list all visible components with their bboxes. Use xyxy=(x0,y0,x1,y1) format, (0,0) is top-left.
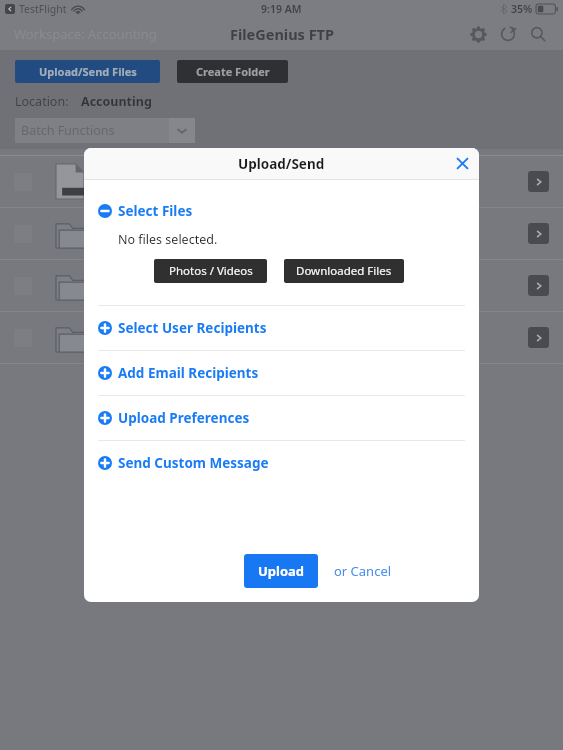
button[interactable]: Open xyxy=(14,312,549,363)
button[interactable]: Open xyxy=(528,275,549,296)
button[interactable]: Select User Recipients xyxy=(98,306,465,350)
staticText: Downloaded Files xyxy=(296,263,392,279)
button[interactable]: Settings xyxy=(463,19,493,49)
staticText: or Cancel xyxy=(334,562,392,580)
button[interactable]: Select Files xyxy=(98,202,465,220)
staticText: Upload/Send Files xyxy=(39,64,137,79)
button[interactable]: or Cancel xyxy=(330,558,396,584)
staticText: Upload/Send xyxy=(238,155,325,173)
button[interactable]: Upload Preferences xyxy=(98,396,465,440)
button[interactable]: Send Custom Message xyxy=(98,441,465,485)
button[interactable]: Open xyxy=(14,156,549,207)
staticText: 9:19 AM xyxy=(261,2,302,16)
staticText: Upload Preferences xyxy=(118,409,250,427)
button[interactable]: Refresh xyxy=(493,19,523,49)
staticText: 35% xyxy=(511,2,533,16)
staticText: Location: xyxy=(15,93,69,110)
staticText: No files selected. xyxy=(118,231,218,248)
staticText: Send Custom Message xyxy=(118,454,269,472)
staticText: TestFlight xyxy=(19,2,67,16)
staticText: Create Folder xyxy=(196,64,270,79)
staticText: Upload xyxy=(258,562,305,580)
button[interactable]: Search xyxy=(523,19,553,49)
staticText: Workspace: Accounting xyxy=(14,25,157,43)
staticText: Select User Recipients xyxy=(118,319,267,337)
button[interactable]: Downloaded Files xyxy=(284,259,404,283)
button[interactable]: Open xyxy=(528,327,549,348)
staticText: FileGenius FTP xyxy=(230,24,334,44)
button[interactable]: Open xyxy=(528,171,549,192)
button[interactable]: Close xyxy=(445,148,479,179)
button[interactable]: Batch Functions xyxy=(15,118,195,143)
button[interactable]: Add Email Recipients xyxy=(98,351,465,395)
staticText: Photos / Videos xyxy=(169,263,253,279)
staticText: Add Email Recipients xyxy=(118,364,259,382)
button[interactable]: Photos / Videos xyxy=(154,259,267,283)
button[interactable]: Upload xyxy=(244,554,318,588)
button[interactable]: Create Folder xyxy=(177,60,288,83)
button[interactable]: Upload/Send Files xyxy=(15,60,160,83)
staticText: Batch Functions xyxy=(21,122,169,139)
button[interactable]: Open xyxy=(528,223,549,244)
button[interactable]: Open xyxy=(14,208,549,259)
staticText: Select Files xyxy=(118,202,193,220)
staticText: Accounting xyxy=(81,93,152,110)
button[interactable]: Open xyxy=(14,260,549,311)
